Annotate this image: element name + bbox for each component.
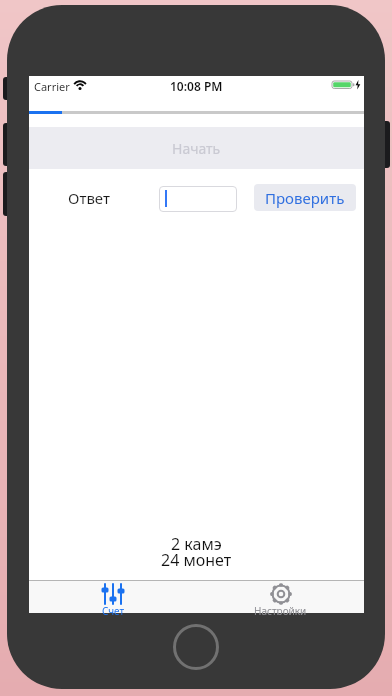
staticText: 2 камэ — [171, 533, 222, 555]
staticText: Carrier — [34, 79, 70, 94]
button[interactable]: Счет — [29, 580, 196, 613]
button[interactable] — [159, 186, 237, 212]
staticText: Настройки — [254, 604, 307, 615]
staticText: Начать — [172, 139, 221, 158]
button[interactable]: Начать — [29, 127, 364, 169]
staticText: Ответ — [68, 188, 110, 208]
staticText: Проверить — [265, 188, 345, 208]
staticText: 24 монет — [161, 549, 232, 571]
staticText: Счет — [102, 604, 125, 615]
staticText: 10:08 PM — [170, 78, 223, 94]
button[interactable]: Проверить — [254, 184, 356, 211]
button[interactable]: Настройки — [196, 580, 364, 613]
